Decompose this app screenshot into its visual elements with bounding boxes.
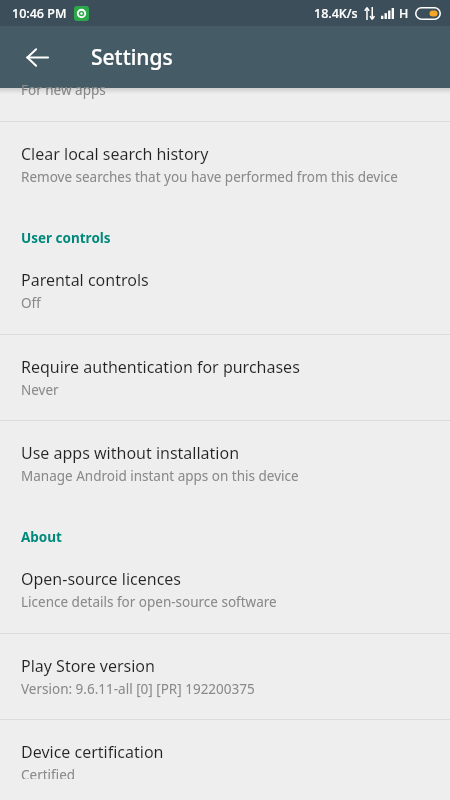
staticText: Never bbox=[21, 381, 59, 399]
staticText: User controls bbox=[21, 229, 111, 247]
staticText: Certified bbox=[21, 766, 76, 779]
staticText: Licence details for open-source software bbox=[21, 593, 277, 611]
button[interactable]: Open-source licences bbox=[0, 556, 450, 633]
button[interactable]: Back bbox=[13, 33, 61, 81]
button[interactable]: Device certification bbox=[0, 720, 450, 800]
staticText: About bbox=[21, 528, 62, 546]
button[interactable]: Clear local search history bbox=[0, 122, 450, 207]
staticText: Clear local search history bbox=[21, 143, 209, 165]
staticText: Use apps without installation bbox=[21, 442, 240, 464]
staticText: Require authentication for purchases bbox=[21, 356, 300, 378]
button[interactable]: Parental controls bbox=[0, 257, 450, 334]
staticText: Device certification bbox=[21, 741, 164, 763]
staticText: Parental controls bbox=[21, 269, 149, 291]
staticText: 10:46 PM bbox=[12, 5, 67, 22]
staticText: Settings bbox=[91, 43, 173, 72]
staticText: Open-source licences bbox=[21, 568, 182, 590]
staticText: Play Store version bbox=[21, 655, 155, 677]
staticText: 18.4K/s bbox=[314, 5, 358, 22]
staticText: H bbox=[399, 5, 409, 22]
button[interactable]: Play Store version bbox=[0, 634, 450, 719]
button[interactable]: Use apps without installation bbox=[0, 421, 450, 506]
staticText: Off bbox=[21, 294, 41, 312]
staticText: Remove searches that you have performed … bbox=[21, 168, 398, 186]
button[interactable]: Require authentication for purchases bbox=[0, 335, 450, 420]
staticText: For new apps bbox=[21, 81, 106, 99]
staticText: Manage Android instant apps on this devi… bbox=[21, 467, 299, 485]
staticText: Version: 9.6.11-all [0] [PR] 192200375 bbox=[21, 680, 255, 698]
button[interactable]: For new apps bbox=[0, 88, 450, 121]
